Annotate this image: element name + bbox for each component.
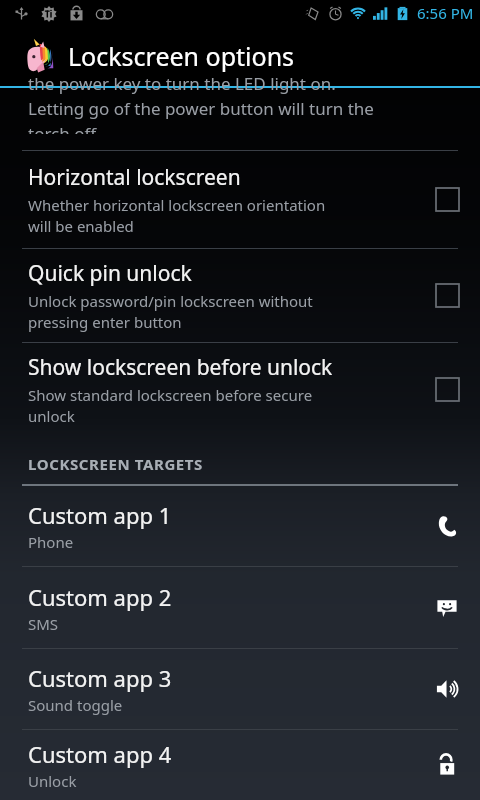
- other: App icon: [14, 34, 58, 78]
- staticText: Unlock password/pin lockscreen without: [28, 291, 313, 311]
- staticText: unlock: [28, 406, 75, 426]
- staticText: Letting go of the power button will turn…: [28, 97, 374, 120]
- staticText: Quick pin unlock: [28, 259, 192, 288]
- staticText: Custom app 2: [28, 582, 172, 612]
- button[interactable]: Custom app 2: [0, 567, 480, 648]
- staticText: Show standard lockscreen before secure: [28, 385, 313, 405]
- button[interactable]: Quick pin unlock: [414, 249, 480, 342]
- staticText: 6:56 PM: [417, 3, 474, 23]
- button[interactable]: Horizontal lockscreen: [414, 151, 480, 248]
- staticText: pressing enter button: [28, 312, 182, 332]
- staticText: Custom app 1: [28, 500, 172, 530]
- staticText: will be enabled: [28, 216, 134, 236]
- button[interactable]: Quick pin unlock: [0, 249, 480, 342]
- staticText: Custom app 4: [28, 739, 172, 769]
- button[interactable]: App icon: [0, 26, 480, 86]
- staticText: Show lockscreen before unlock: [28, 353, 333, 382]
- staticText: Sound toggle: [28, 695, 123, 715]
- button[interactable]: Show lockscreen before unlock: [0, 343, 480, 436]
- staticText: torch off.: [28, 122, 101, 134]
- staticText: LOCKSCREEN TARGETS: [28, 454, 203, 474]
- staticText: Lockscreen options: [68, 39, 295, 73]
- staticText: SMS: [28, 614, 59, 634]
- button[interactable]: Custom app 4: [0, 730, 480, 800]
- button[interactable]: Show lockscreen before unlock: [414, 343, 480, 436]
- button[interactable]: Custom app 3: [0, 649, 480, 729]
- button[interactable]: Horizontal lockscreen: [0, 151, 480, 248]
- staticText: Phone: [28, 532, 74, 552]
- staticText: Custom app 3: [28, 663, 172, 693]
- button[interactable]: the power key to turn the LED light on.: [0, 88, 480, 150]
- staticText: Whether horizontal lockscreen orientatio…: [28, 195, 326, 215]
- staticText: the power key to turn the LED light on.: [28, 72, 336, 95]
- staticText: Horizontal lockscreen: [28, 163, 241, 192]
- button[interactable]: Custom app 1: [0, 486, 480, 566]
- staticText: Unlock: [28, 771, 77, 791]
